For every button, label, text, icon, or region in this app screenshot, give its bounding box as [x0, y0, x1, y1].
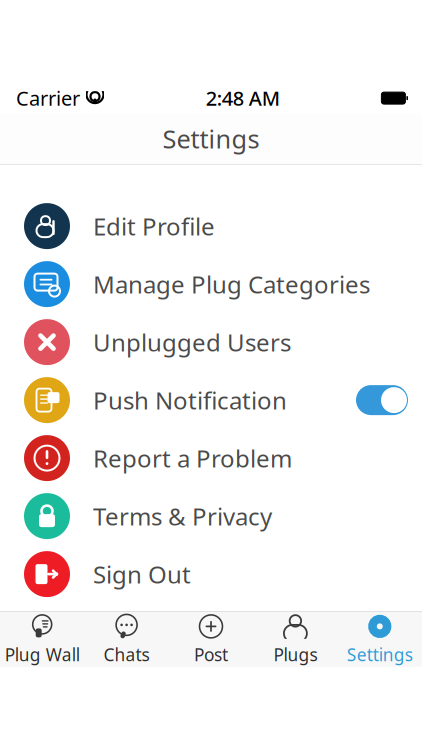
- staticText: Manage Plug Categories: [93, 268, 370, 300]
- staticText: Settings: [162, 122, 259, 155]
- button[interactable]: Sign Out: [0, 545, 422, 603]
- staticText: Report a Problem: [93, 442, 292, 474]
- button[interactable]: Terms & Privacy: [0, 487, 422, 545]
- button[interactable]: Chats: [84, 612, 169, 667]
- staticText: Carrier: [16, 85, 80, 111]
- staticText: Plug Wall: [5, 643, 80, 666]
- button[interactable]: Plug Wall: [0, 612, 84, 667]
- button[interactable]: Unplugged Users: [0, 313, 422, 371]
- button[interactable]: Manage Plug Categories: [0, 255, 422, 313]
- staticText: Terms & Privacy: [93, 500, 272, 532]
- staticText: Post: [194, 643, 228, 666]
- staticText: Plugs: [273, 643, 317, 666]
- button[interactable]: Post: [169, 612, 253, 667]
- staticText: Sign Out: [93, 558, 191, 590]
- staticText: Chats: [104, 643, 150, 666]
- staticText: Edit Profile: [93, 210, 215, 242]
- staticText: Push Notification: [93, 384, 287, 416]
- button[interactable]: Edit Profile: [0, 197, 422, 255]
- button[interactable]: Report a Problem: [0, 429, 422, 487]
- staticText: Settings: [347, 643, 413, 666]
- button[interactable]: Push Notification: [0, 371, 422, 429]
- button[interactable]: Push Notification toggle: [356, 385, 408, 415]
- staticText: 2:48 AM: [206, 85, 280, 111]
- button[interactable]: Settings: [338, 612, 422, 667]
- staticText: Unplugged Users: [93, 326, 291, 358]
- button[interactable]: Plugs: [253, 612, 338, 667]
